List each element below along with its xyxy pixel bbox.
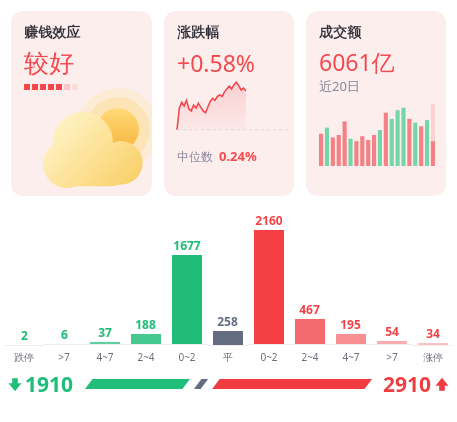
staticText: 2~4	[301, 350, 319, 364]
button[interactable]: 195	[330, 212, 371, 364]
staticText: 2~4	[137, 350, 155, 364]
staticText: 4~7	[96, 350, 114, 364]
staticText: 2160	[255, 212, 283, 228]
staticText: 跌停	[14, 351, 34, 364]
staticText: 近20日	[319, 77, 360, 95]
button[interactable]: 188	[125, 212, 166, 364]
staticText: 6	[61, 326, 68, 342]
staticText: 1677	[173, 237, 201, 253]
staticText: 54	[385, 323, 399, 339]
button[interactable]: 赚钱效应	[11, 11, 152, 196]
staticText: 0~2	[260, 350, 278, 364]
staticText: 0.24%	[219, 147, 257, 165]
staticText: 37	[98, 324, 112, 340]
button[interactable]: 2160	[248, 212, 289, 364]
button[interactable]: 2	[4, 212, 44, 364]
staticText: 较好	[24, 48, 74, 79]
button[interactable]: 涨跌幅	[164, 11, 294, 196]
staticText: 467	[299, 301, 320, 317]
staticText: 赚钱效应	[24, 24, 80, 42]
staticText: >7	[58, 350, 70, 364]
button[interactable]: 54	[371, 212, 412, 364]
button[interactable]: 258	[207, 212, 248, 364]
staticText: 成交额	[319, 24, 361, 42]
staticText: 2910	[383, 370, 432, 398]
staticText: 188	[135, 316, 156, 332]
staticText: 0~2	[178, 350, 196, 364]
staticText: 涨跌幅	[177, 24, 219, 42]
button[interactable]: 1677	[166, 212, 207, 364]
staticText: 1910	[25, 370, 74, 398]
staticText: 258	[217, 313, 238, 329]
staticText: 34	[426, 325, 440, 341]
staticText: 涨停	[423, 351, 443, 364]
button[interactable]: 467	[289, 212, 330, 364]
staticText: >7	[386, 350, 398, 364]
staticText: 4~7	[342, 350, 360, 364]
staticText: 平	[223, 351, 233, 364]
button[interactable]: 成交额	[306, 11, 446, 196]
staticText: 6061亿	[319, 46, 395, 77]
staticText: +0.58%	[177, 47, 255, 78]
staticText: 2	[21, 327, 28, 343]
button[interactable]: 34	[412, 212, 453, 364]
staticText: 195	[340, 316, 361, 332]
button[interactable]: 37	[84, 212, 125, 364]
other: 下跌	[8, 377, 22, 392]
staticText: 中位数	[177, 149, 213, 164]
button[interactable]: 6	[44, 212, 84, 364]
other: 上涨	[435, 377, 449, 392]
